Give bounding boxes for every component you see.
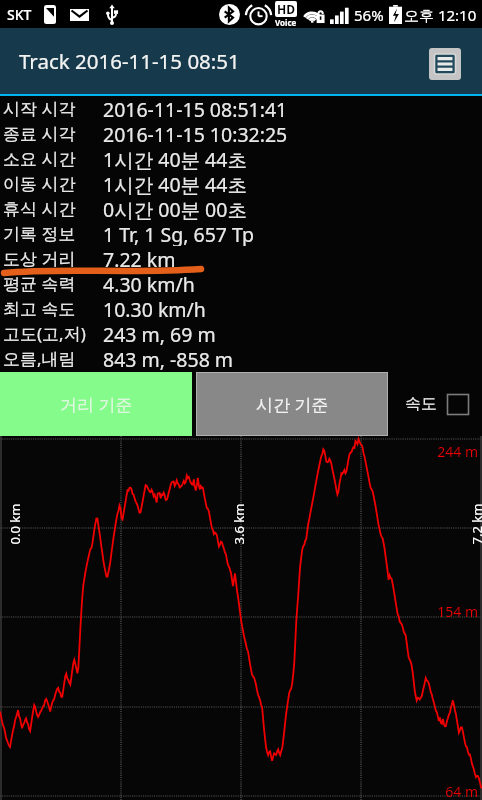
staticText: 2016-11-15 10:32:25	[103, 121, 288, 146]
button[interactable]: 최고 속도	[0, 296, 482, 321]
button[interactable]: 기록 정보	[0, 221, 482, 246]
staticText: 1시간 40분 44초	[103, 171, 247, 196]
staticText: 0시간 00분 00초	[103, 196, 247, 221]
staticText: 1 Tr, 1 Sg, 657 Tp	[103, 221, 254, 246]
staticText: 오후 12:10	[404, 5, 477, 25]
button[interactable]: 속도	[392, 372, 482, 436]
button[interactable]: 도상 거리	[0, 246, 482, 271]
button[interactable]: 이동 시간	[0, 171, 482, 196]
staticText: HD	[277, 1, 295, 17]
staticText: 종료 시각	[3, 122, 103, 145]
staticText: 64 m	[412, 782, 478, 800]
button[interactable]: 시작 시각	[0, 96, 482, 121]
staticText: 기록 정보	[3, 222, 103, 245]
staticText: 고도(고,저)	[3, 322, 103, 345]
staticText: 7.2 km	[467, 503, 482, 544]
staticText: 휴식 시간	[3, 197, 103, 220]
staticText: 소요 시간	[3, 147, 103, 170]
staticText: 10.30 km/h	[103, 296, 206, 321]
staticText: 244 m	[412, 442, 478, 461]
staticText: 1시간 40분 44초	[103, 146, 247, 171]
button[interactable]: 고도(고,저)	[0, 321, 482, 346]
staticText: 3.6 km	[229, 503, 247, 544]
button[interactable]: 종료 시각	[0, 121, 482, 146]
staticText: 시간 기준	[256, 393, 329, 416]
button[interactable]: 휴식 시간	[0, 196, 482, 221]
staticText: SKT	[7, 5, 32, 24]
staticText: Track 2016-11-15 08:51	[19, 47, 240, 75]
button[interactable]: 평균 속력	[0, 271, 482, 296]
staticText: 7.22 km	[103, 246, 176, 271]
staticText: Voice	[275, 17, 297, 28]
staticText: 2016-11-15 08:51:41	[103, 96, 288, 121]
staticText: 오름,내림	[3, 347, 103, 370]
staticText: 843 m, -858 m	[103, 346, 234, 371]
staticText: 56%	[354, 5, 384, 25]
staticText: 243 m, 69 m	[103, 321, 216, 346]
button[interactable]: 오름,내림	[0, 346, 482, 371]
staticText: 이동 시간	[3, 172, 103, 195]
button[interactable]: Menu	[429, 48, 461, 80]
staticText: 시작 시각	[3, 97, 103, 120]
staticText: 평균 속력	[3, 272, 103, 295]
staticText: 0.0 km	[5, 503, 23, 544]
staticText: 4.30 km/h	[103, 271, 195, 296]
button[interactable]: 거리 기준	[0, 372, 192, 436]
staticText: 154 m	[412, 602, 478, 621]
staticText: 도상 거리	[3, 247, 103, 270]
button[interactable]: 소요 시간	[0, 146, 482, 171]
button[interactable]: 시간 기준	[197, 373, 387, 435]
staticText: 최고 속도	[3, 297, 103, 320]
staticText: 거리 기준	[60, 393, 133, 416]
staticText: 속도	[405, 394, 437, 414]
